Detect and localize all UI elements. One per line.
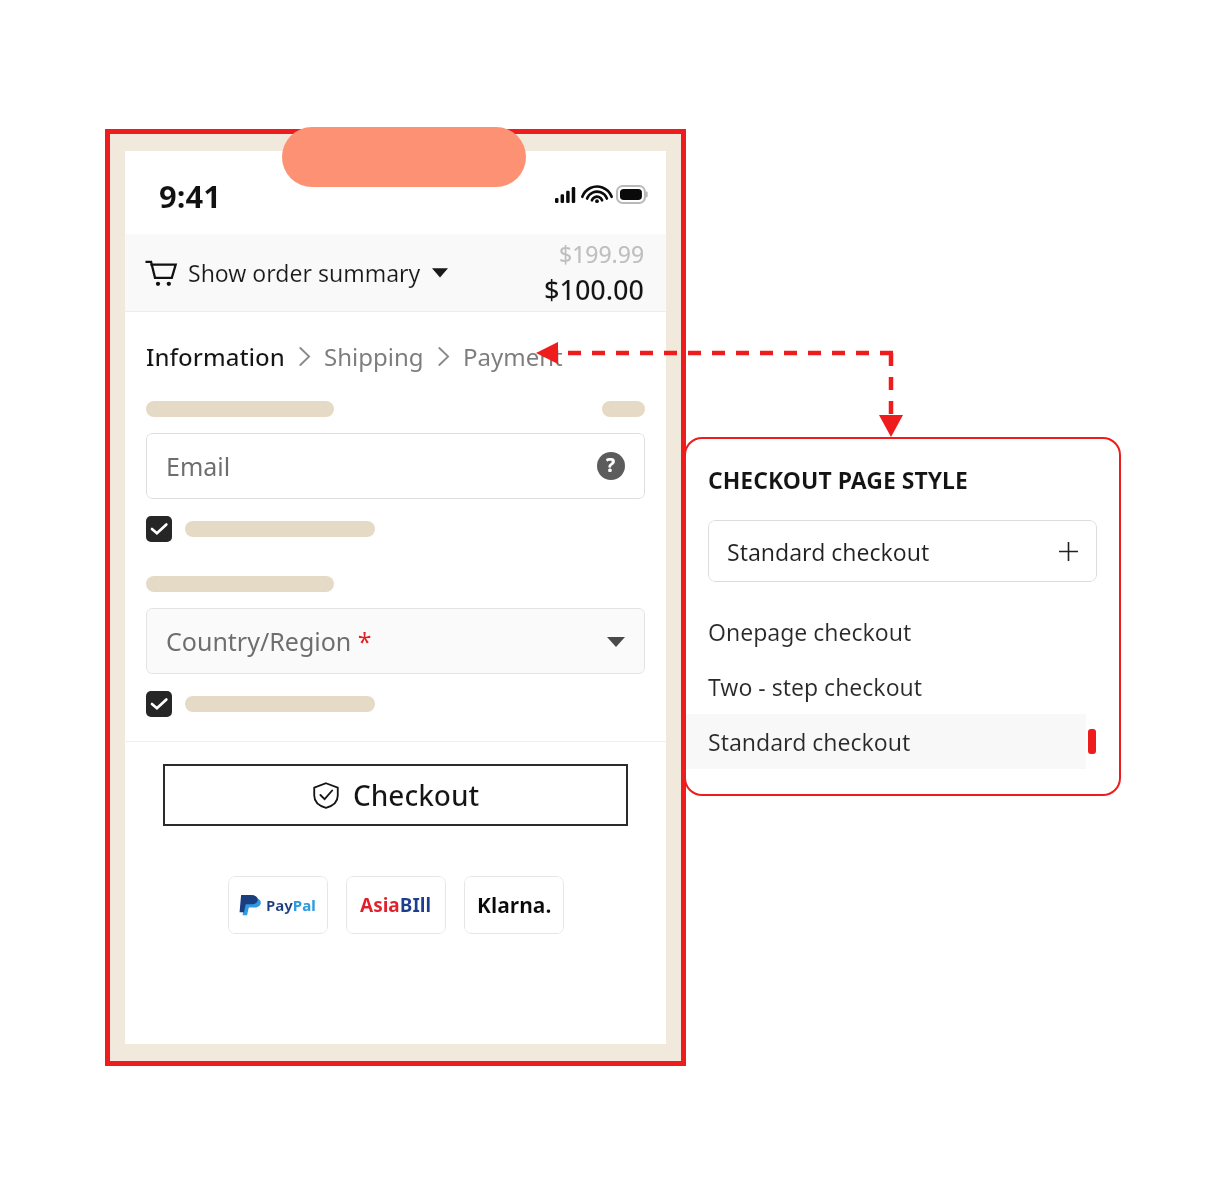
button[interactable]: Onepage checkout	[686, 604, 1086, 659]
staticText: 9:41	[159, 175, 221, 217]
staticText: $100.00	[544, 271, 645, 308]
button[interactable]: Country/Region *	[146, 608, 645, 674]
staticText: Country/Region *	[166, 624, 372, 658]
staticText: Email	[166, 449, 231, 483]
staticText: Payment	[463, 340, 563, 373]
button[interactable]: Two - step checkout	[686, 659, 1086, 714]
other: Expand	[1059, 542, 1078, 561]
staticText: $199.99	[559, 238, 645, 269]
other: Help	[597, 452, 625, 480]
button[interactable]: PayPal	[228, 876, 328, 934]
button[interactable]: Standard checkout	[708, 520, 1097, 582]
button[interactable]: Show order summary	[125, 234, 666, 311]
staticText: Standard checkout	[708, 726, 911, 757]
staticText: AsiaBIll	[360, 892, 432, 918]
staticText: Information	[146, 340, 285, 373]
button[interactable]: Klarna.	[464, 876, 564, 934]
staticText: Show order summary	[188, 257, 421, 288]
button[interactable]: Standard checkout	[686, 714, 1086, 769]
button[interactable]	[146, 691, 172, 717]
staticText: Standard checkout	[727, 536, 930, 567]
staticText: Onepage checkout	[708, 616, 912, 647]
button[interactable]: Checkout	[163, 764, 628, 826]
staticText: CHECKOUT PAGE STYLE	[708, 464, 968, 495]
staticText: Checkout	[353, 776, 480, 814]
button[interactable]: Email	[146, 433, 645, 499]
staticText: Klarna.	[477, 891, 552, 920]
button[interactable]	[146, 516, 172, 542]
staticText: Shipping	[324, 340, 424, 373]
staticText: PayPal	[266, 895, 316, 915]
button[interactable]: AsiaBIll	[346, 876, 446, 934]
staticText: ?	[606, 452, 616, 478]
staticText: Two - step checkout	[708, 671, 923, 702]
